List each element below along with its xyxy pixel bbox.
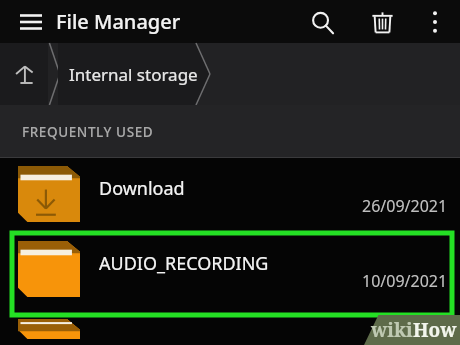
staticText: FREQUENTLY USED [22,123,154,141]
button[interactable]: Internal storage [58,43,210,105]
button[interactable]: More options [416,3,454,41]
staticText: wiki [371,317,413,343]
button[interactable]: Up one level [0,43,48,105]
button[interactable]: Download [0,158,460,230]
button[interactable]: Open navigation menu [14,5,48,39]
staticText: 26/09/2021 [362,195,448,217]
staticText: Internal storage [69,63,198,86]
button[interactable]: Search [302,2,342,42]
staticText: How [413,317,457,343]
staticText: Download [99,176,185,201]
staticText: AUDIO_RECORDING [99,251,269,276]
button[interactable]: AUDIO_RECORDING [0,232,460,306]
staticText: File Manager [56,8,181,35]
staticText: 10/09/2021 [362,270,448,292]
button[interactable]: Delete [362,2,402,42]
